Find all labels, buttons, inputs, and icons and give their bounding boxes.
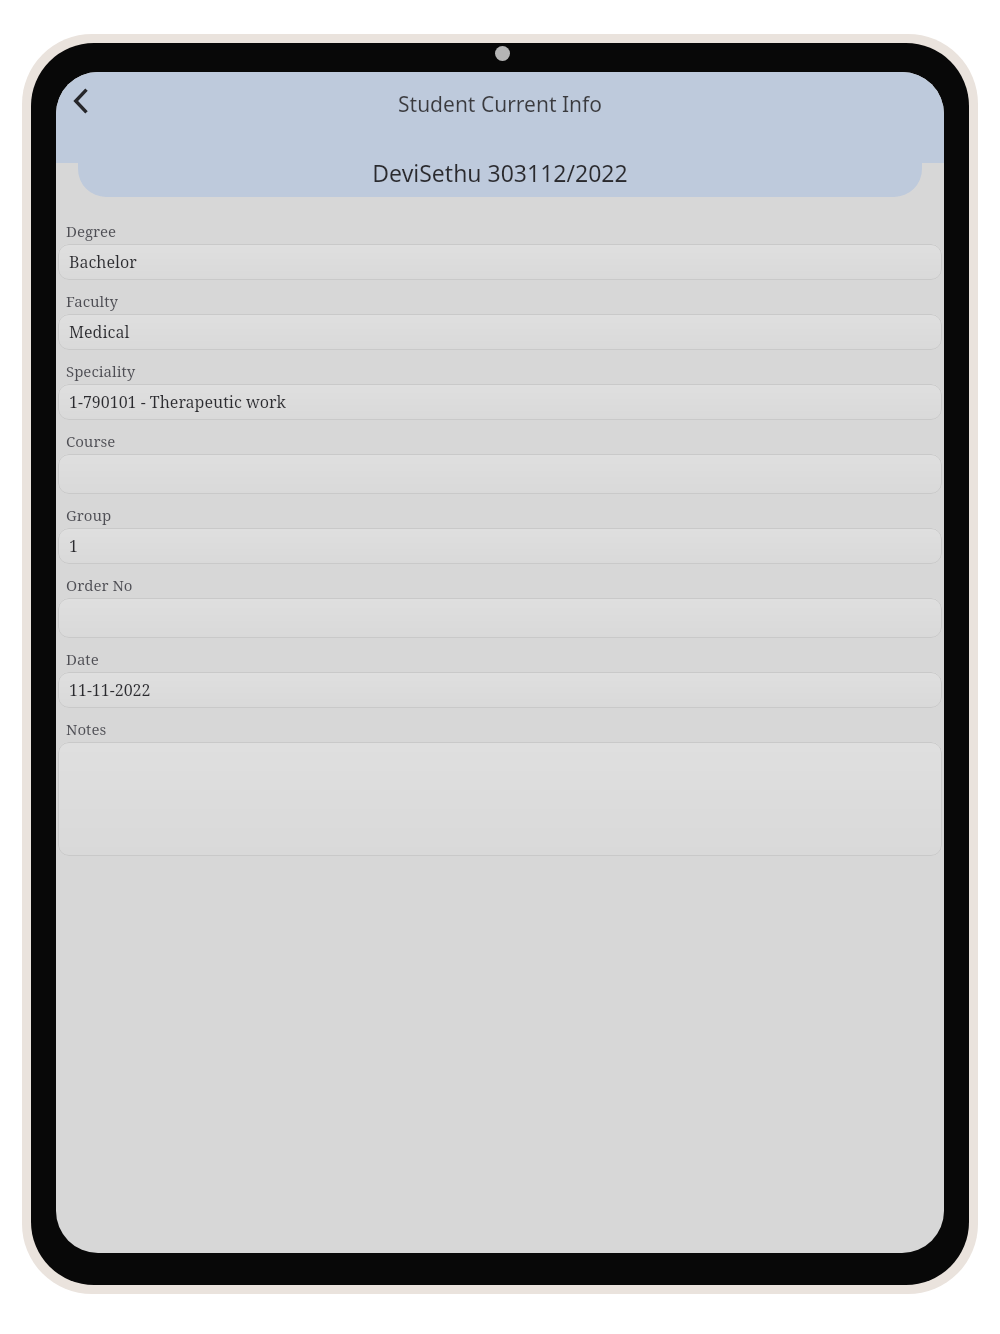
staticText: 1-790101 - Therapeutic work <box>69 391 286 413</box>
staticText: Faculty <box>66 291 119 311</box>
button[interactable]: Medical <box>58 314 942 350</box>
staticText: Group <box>66 505 112 525</box>
button[interactable]: Bachelor <box>58 244 942 280</box>
staticText: Date <box>66 649 99 669</box>
button[interactable] <box>58 598 942 638</box>
button[interactable]: 1 <box>58 528 942 564</box>
button[interactable]: Back <box>56 76 106 126</box>
button[interactable] <box>58 454 942 494</box>
staticText: DeviSethu 303112/2022 <box>372 157 628 188</box>
button[interactable] <box>58 742 942 856</box>
staticText: 1 <box>69 535 78 557</box>
staticText: Notes <box>66 719 107 739</box>
staticText: Order No <box>66 575 133 595</box>
staticText: Medical <box>69 321 130 343</box>
staticText: Bachelor <box>69 251 137 273</box>
button[interactable]: 11-11-2022 <box>58 672 942 708</box>
staticText: Speciality <box>66 361 136 381</box>
staticText: Course <box>66 431 116 451</box>
staticText: Degree <box>66 221 117 241</box>
button[interactable]: 1-790101 - Therapeutic work <box>58 384 942 420</box>
staticText: 11-11-2022 <box>69 679 151 701</box>
staticText: Student Current Info <box>398 90 602 119</box>
